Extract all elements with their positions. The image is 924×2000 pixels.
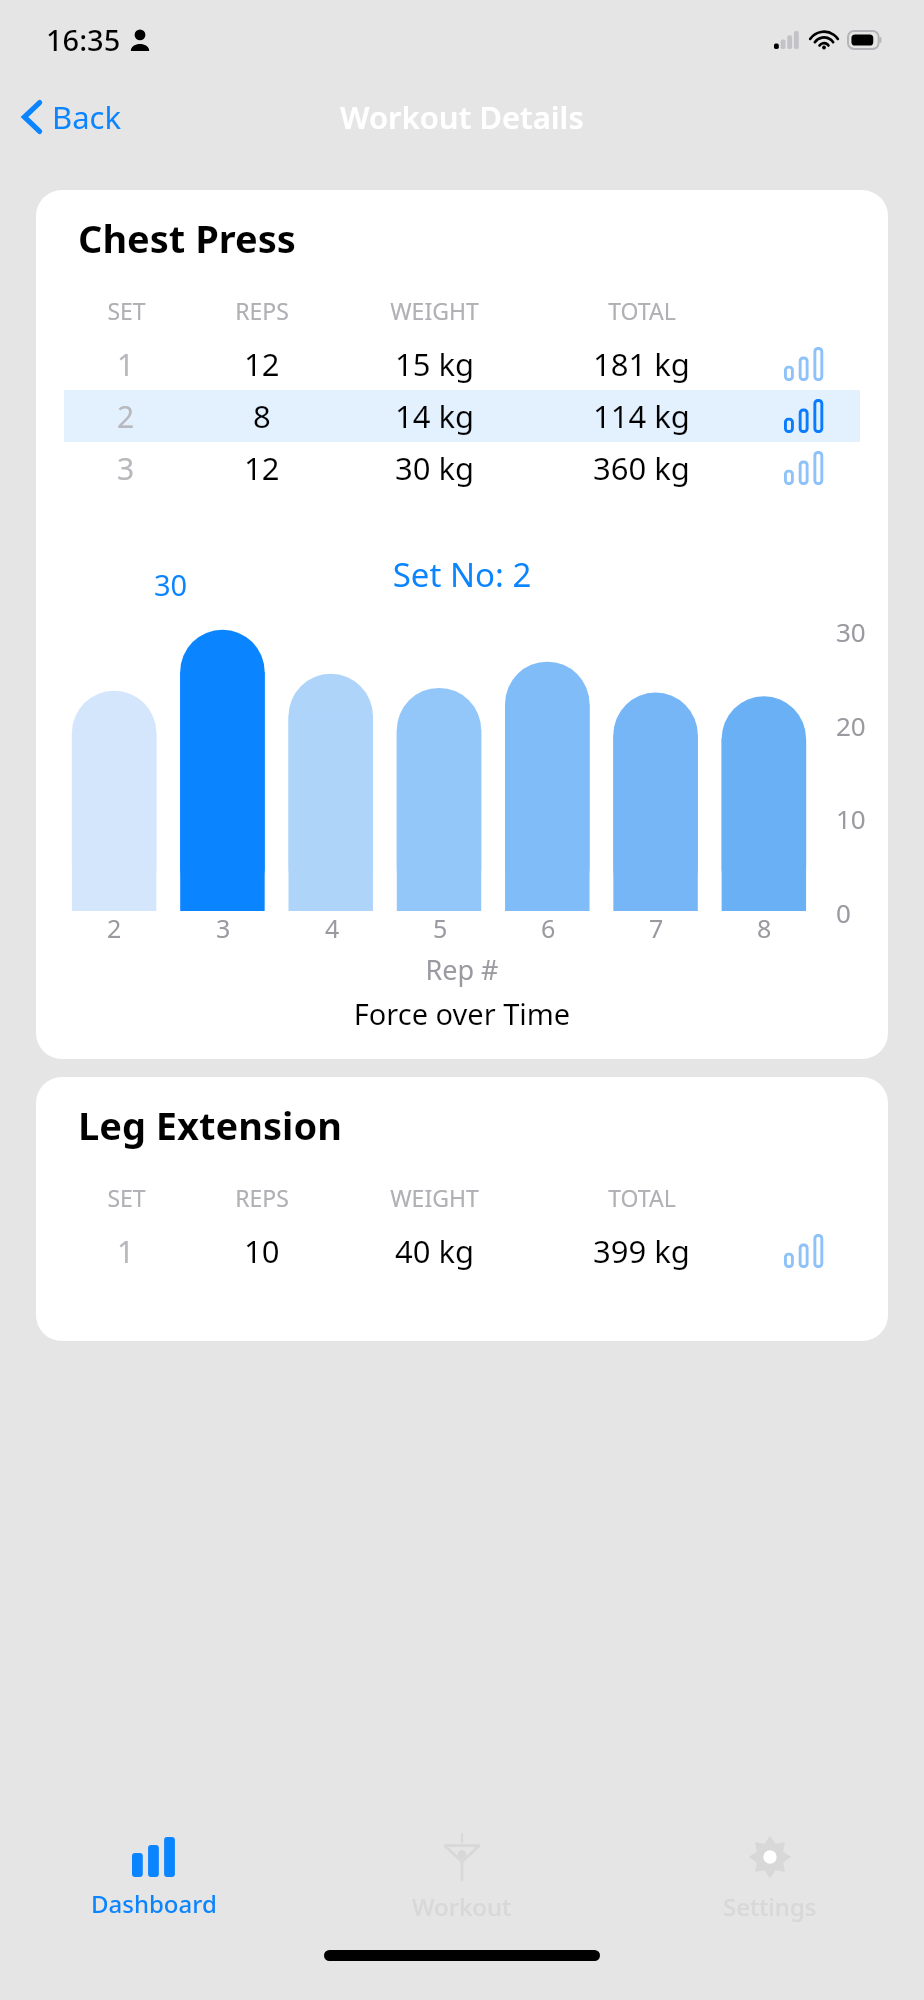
staticText: 0 xyxy=(836,895,851,930)
staticText: Back xyxy=(52,96,121,138)
staticText: SET xyxy=(107,1182,146,1213)
staticText: Chest Press xyxy=(78,212,296,264)
button[interactable]: Show chart xyxy=(779,446,831,490)
button[interactable]: Show chart xyxy=(779,342,831,386)
staticText: 15 kg xyxy=(395,343,475,385)
staticText: Dashboard xyxy=(91,1887,217,1920)
staticText: 8 xyxy=(253,395,271,437)
staticText: Rep # xyxy=(36,951,888,988)
staticText: 4 xyxy=(325,911,340,945)
staticText: 16:35 xyxy=(46,20,121,59)
staticText: Force over Time xyxy=(36,994,888,1033)
button[interactable]: Back xyxy=(0,88,135,146)
button[interactable]: 1 xyxy=(64,1225,860,1277)
staticText: 14 kg xyxy=(395,395,475,437)
staticText: REPS xyxy=(235,295,289,326)
staticText: 12 xyxy=(244,447,280,489)
button[interactable]: Show chart xyxy=(779,1229,831,1273)
staticText: 360 kg xyxy=(593,447,690,489)
staticText: TOTAL xyxy=(608,1182,676,1213)
button[interactable]: Show chart xyxy=(779,394,831,438)
staticText: Workout Details xyxy=(340,96,584,138)
button[interactable]: Dashboard xyxy=(0,1818,308,1938)
staticText: 114 kg xyxy=(593,395,690,437)
staticText: 1 xyxy=(117,1231,135,1272)
staticText: 12 xyxy=(244,343,280,385)
staticText: WEIGHT xyxy=(390,1182,479,1213)
staticText: REPS xyxy=(235,1182,289,1213)
staticText: 10 xyxy=(244,1230,280,1272)
staticText: 8 xyxy=(757,911,772,945)
staticText: 30 xyxy=(836,614,866,649)
staticText: 40 kg xyxy=(395,1230,475,1272)
staticText: 7 xyxy=(649,911,664,945)
staticText: 1 xyxy=(117,344,135,385)
staticText: 30 kg xyxy=(395,447,475,489)
staticText: 399 kg xyxy=(593,1230,690,1272)
staticText: 2 xyxy=(107,911,122,945)
staticText: 20 xyxy=(836,708,866,743)
staticText: 10 xyxy=(836,801,866,836)
staticText: 3 xyxy=(216,911,231,945)
staticText: Settings xyxy=(723,1890,817,1923)
staticText: 5 xyxy=(433,911,448,945)
button[interactable]: 1 xyxy=(64,338,860,390)
staticText: 2 xyxy=(117,396,135,437)
staticText: WEIGHT xyxy=(390,295,479,326)
staticText: TOTAL xyxy=(608,295,676,326)
staticText: SET xyxy=(107,295,146,326)
staticText: Workout xyxy=(412,1890,512,1923)
button[interactable]: 2 xyxy=(64,390,860,442)
staticText: 6 xyxy=(541,911,556,945)
staticText: Leg Extension xyxy=(78,1099,342,1151)
staticText: Set No: 2 xyxy=(36,552,888,597)
staticText: 3 xyxy=(117,448,135,489)
button[interactable]: 3 xyxy=(64,442,860,494)
staticText: 181 kg xyxy=(593,343,690,385)
staticText: 30 xyxy=(154,565,188,604)
